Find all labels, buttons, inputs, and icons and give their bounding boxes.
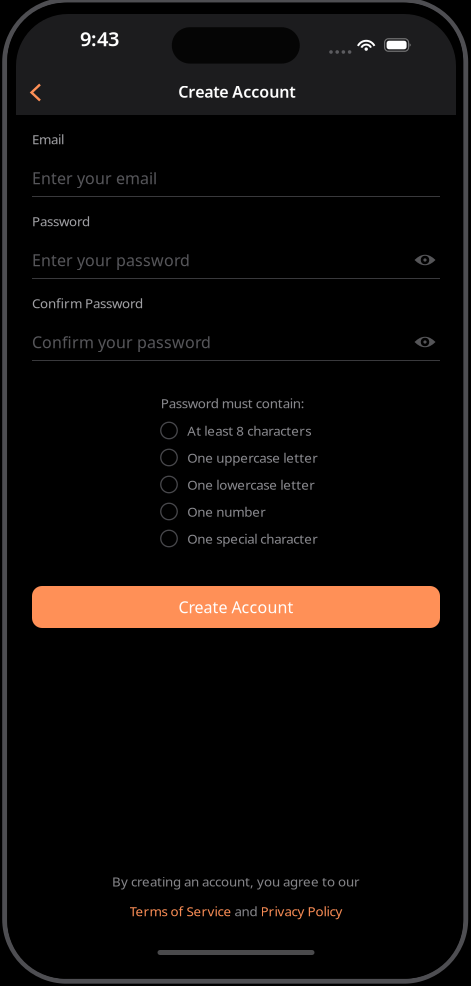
staticText: By creating an account, you agree to our bbox=[112, 873, 360, 890]
staticText: Create Account bbox=[178, 81, 295, 102]
staticText: 9:43 bbox=[80, 25, 119, 52]
staticText: One uppercase letter bbox=[187, 449, 318, 466]
staticText: Password must contain: bbox=[161, 394, 305, 412]
staticText: Password bbox=[32, 212, 90, 230]
staticText: and bbox=[231, 902, 260, 920]
button[interactable]: Create Account bbox=[32, 586, 440, 628]
staticText: Privacy Policy bbox=[260, 902, 342, 920]
button[interactable]: Show password bbox=[410, 330, 440, 354]
staticText: Create Account bbox=[178, 596, 293, 618]
staticText: Email bbox=[32, 130, 64, 148]
staticText: Terms of Service bbox=[129, 902, 231, 920]
button[interactable]: Show password bbox=[410, 248, 440, 272]
staticText: Enter your password bbox=[32, 249, 190, 271]
staticText: One number bbox=[187, 503, 266, 520]
staticText: One special character bbox=[187, 530, 318, 547]
staticText: Confirm your password bbox=[32, 331, 211, 353]
staticText: At least 8 characters bbox=[187, 422, 311, 439]
staticText: One lowercase letter bbox=[187, 476, 315, 493]
button[interactable]: Privacy Policy bbox=[260, 902, 342, 920]
button[interactable]: Back bbox=[16, 71, 56, 113]
staticText: Confirm Password bbox=[32, 294, 143, 312]
button[interactable]: Terms of Service bbox=[129, 902, 231, 920]
staticText: Enter your email bbox=[32, 167, 157, 189]
